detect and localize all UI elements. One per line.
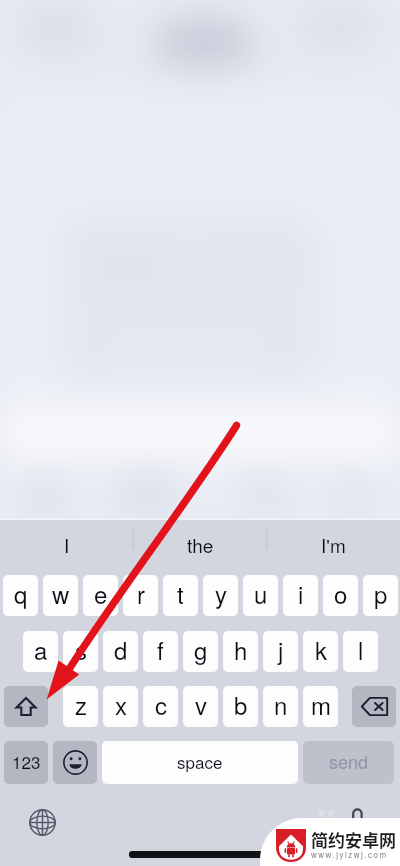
- button[interactable]: x: [103, 686, 138, 727]
- staticText: t: [177, 576, 184, 610]
- staticText: 简约安卓网: [311, 827, 396, 852]
- staticText: j: [278, 632, 284, 666]
- staticText: space: [177, 749, 223, 773]
- button[interactable]: t: [163, 575, 198, 616]
- staticText: a: [34, 632, 48, 666]
- staticText: i: [298, 576, 304, 610]
- button[interactable]: I'm: [267, 520, 400, 561]
- button[interactable]: f: [143, 631, 178, 672]
- button[interactable]: Backspace: [352, 686, 396, 727]
- staticText: m: [311, 687, 331, 721]
- button[interactable]: c: [143, 686, 178, 727]
- staticText: k: [315, 632, 327, 666]
- staticText: n: [274, 687, 288, 721]
- staticText: z: [75, 687, 87, 721]
- button[interactable]: s: [63, 631, 98, 672]
- staticText: b: [234, 687, 248, 721]
- staticText: www.jylzwj.com: [311, 849, 388, 860]
- button[interactable]: the: [134, 520, 267, 561]
- button[interactable]: r: [123, 575, 158, 616]
- staticText: send: [329, 748, 369, 774]
- staticText: l: [358, 632, 364, 666]
- button[interactable]: Shift: [4, 686, 48, 727]
- button[interactable]: m: [303, 686, 338, 727]
- button[interactable]: z: [63, 686, 98, 727]
- staticText: v: [195, 687, 207, 721]
- button[interactable]: b: [223, 686, 258, 727]
- button[interactable]: n: [263, 686, 298, 727]
- button[interactable]: v: [183, 686, 218, 727]
- button[interactable]: h: [223, 631, 258, 672]
- staticText: q: [14, 576, 28, 610]
- button[interactable]: I: [0, 520, 134, 561]
- button[interactable]: Change keyboard language: [29, 809, 56, 836]
- button[interactable]: 123: [4, 741, 48, 784]
- staticText: p: [374, 576, 388, 610]
- staticText: c: [155, 687, 167, 721]
- staticText: I: [64, 531, 70, 558]
- staticText: x: [115, 687, 127, 721]
- button[interactable]: u: [243, 575, 278, 616]
- staticText: u: [254, 576, 268, 610]
- button[interactable]: i: [283, 575, 318, 616]
- button[interactable]: q: [3, 575, 38, 616]
- staticText: r: [137, 576, 145, 610]
- staticText: s: [75, 632, 87, 666]
- button[interactable]: e: [83, 575, 118, 616]
- button[interactable]: w: [43, 575, 78, 616]
- staticText: d: [114, 632, 128, 666]
- staticText: 123: [12, 749, 41, 773]
- staticText: I'm: [321, 531, 346, 558]
- button[interactable]: d: [103, 631, 138, 672]
- button[interactable]: j: [263, 631, 298, 672]
- button[interactable]: g: [183, 631, 218, 672]
- staticText: w: [52, 576, 70, 610]
- staticText: the: [187, 531, 214, 558]
- button[interactable]: o: [323, 575, 358, 616]
- staticText: e: [94, 576, 108, 610]
- staticText: y: [215, 576, 227, 610]
- staticText: g: [194, 632, 208, 666]
- button[interactable]: l: [343, 631, 378, 672]
- button[interactable]: Emoji keyboard: [53, 741, 97, 784]
- button[interactable]: a: [23, 631, 58, 672]
- button[interactable]: k: [303, 631, 338, 672]
- button[interactable]: p: [363, 575, 398, 616]
- button[interactable]: send: [303, 741, 394, 784]
- staticText: f: [157, 632, 164, 666]
- button[interactable]: space: [102, 741, 298, 784]
- button[interactable]: y: [203, 575, 238, 616]
- staticText: o: [334, 576, 348, 610]
- staticText: h: [234, 632, 248, 666]
